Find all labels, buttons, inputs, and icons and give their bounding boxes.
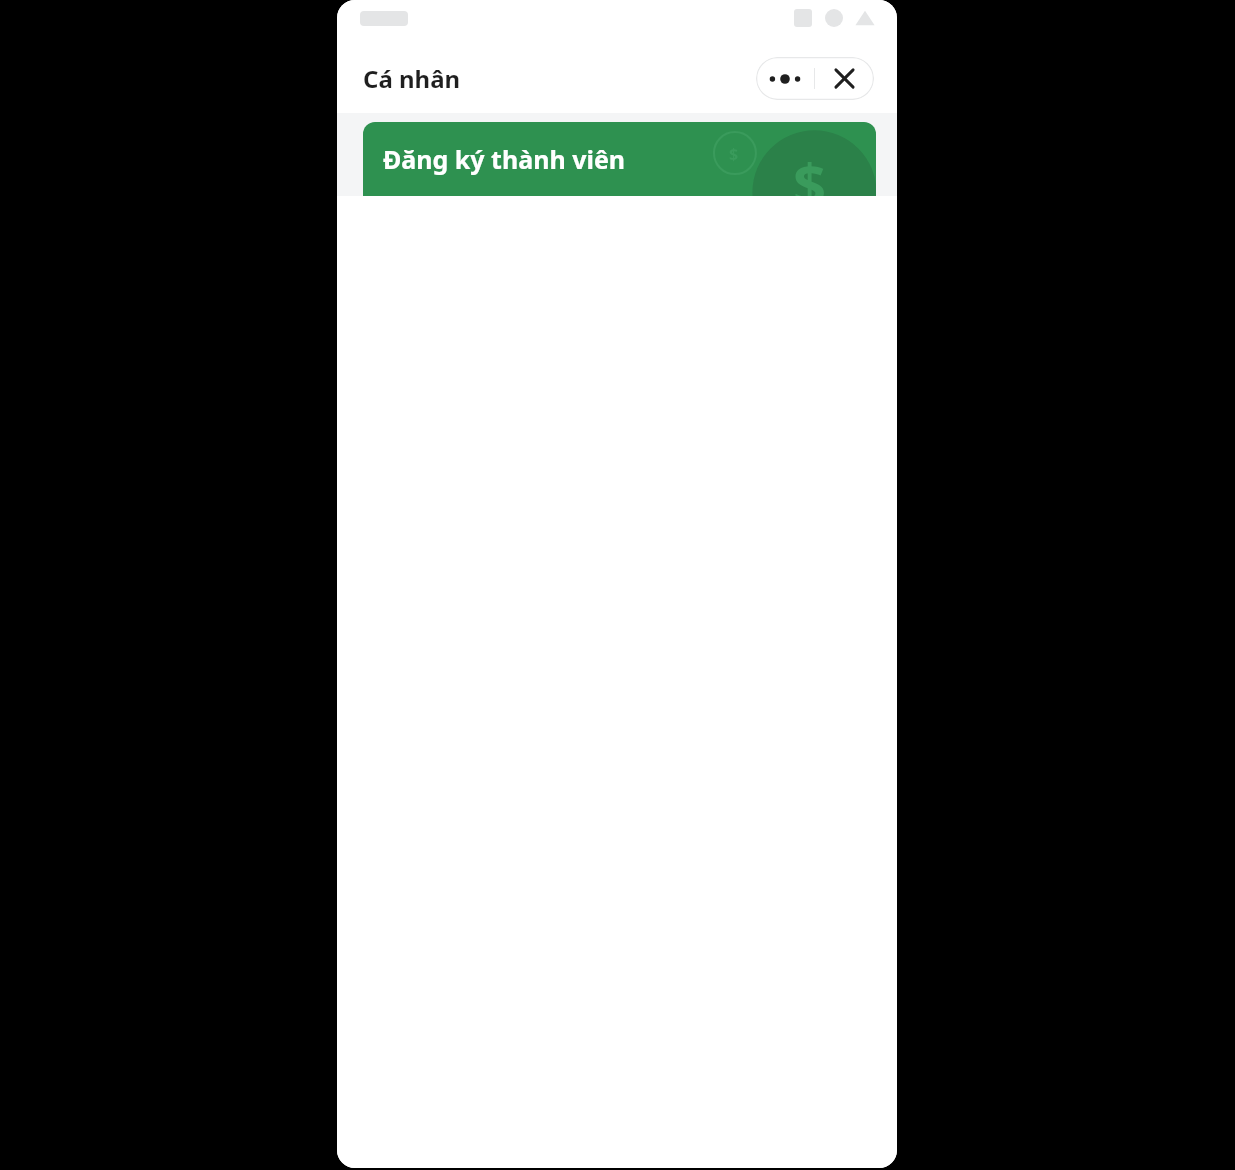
button[interactable]: $ bbox=[363, 122, 876, 196]
staticText: $ bbox=[793, 144, 827, 196]
button[interactable]: More options bbox=[756, 57, 814, 100]
staticText: $ bbox=[729, 143, 739, 165]
button[interactable]: Close bbox=[815, 57, 874, 100]
staticText: Cá nhân bbox=[363, 62, 461, 95]
staticText: Đăng ký thành viên bbox=[383, 142, 626, 176]
